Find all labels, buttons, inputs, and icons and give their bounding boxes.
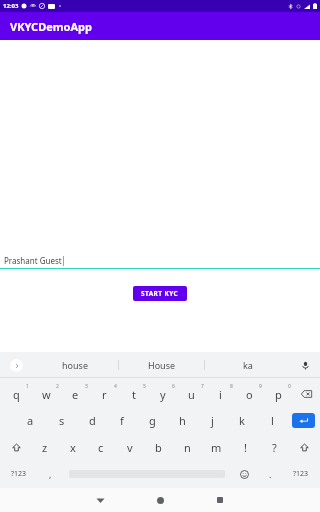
staticText: ? bbox=[272, 440, 277, 455]
staticText: t bbox=[132, 387, 136, 402]
button[interactable]: ! bbox=[231, 434, 260, 461]
staticText: ?123 bbox=[11, 469, 27, 479]
button[interactable]: f bbox=[107, 407, 137, 434]
button[interactable]: l bbox=[257, 407, 287, 434]
button[interactable]: i bbox=[206, 380, 235, 407]
button[interactable]: ?123 bbox=[283, 461, 319, 487]
button[interactable]: x bbox=[59, 434, 87, 461]
staticText: f bbox=[120, 413, 124, 428]
staticText: a bbox=[27, 413, 34, 428]
staticText: s bbox=[59, 413, 65, 428]
staticText: d bbox=[89, 413, 96, 428]
staticText: 0 bbox=[288, 383, 291, 390]
button[interactable]: q bbox=[1, 380, 31, 407]
staticText: r bbox=[102, 387, 107, 402]
staticText: b bbox=[155, 440, 162, 455]
button[interactable]: house bbox=[32, 352, 118, 378]
staticText: 3 bbox=[85, 383, 88, 390]
staticText: l bbox=[271, 413, 274, 428]
button[interactable]: Back bbox=[70, 488, 130, 512]
staticText: START KYC bbox=[141, 289, 179, 298]
staticText: ka bbox=[243, 359, 253, 371]
button[interactable]: Space bbox=[63, 461, 231, 487]
button[interactable]: r bbox=[90, 380, 119, 407]
button[interactable]: ka bbox=[205, 352, 290, 378]
staticText: g bbox=[149, 413, 156, 428]
button[interactable]: s bbox=[46, 407, 77, 434]
button[interactable]: Backspace bbox=[293, 380, 319, 407]
staticText: 8 bbox=[230, 383, 233, 390]
button[interactable]: o bbox=[235, 380, 264, 407]
button[interactable]: e bbox=[61, 380, 90, 407]
staticText: z bbox=[42, 440, 48, 455]
button[interactable]: More suggestions bbox=[0, 352, 32, 378]
button[interactable]: j bbox=[197, 407, 227, 434]
button[interactable]: Enter bbox=[287, 407, 319, 434]
button[interactable]: k bbox=[227, 407, 257, 434]
button[interactable]: . bbox=[257, 461, 283, 487]
staticText: 4 bbox=[114, 383, 117, 390]
button[interactable]: h bbox=[167, 407, 197, 434]
staticText: u bbox=[188, 387, 195, 402]
button[interactable]: b bbox=[144, 434, 173, 461]
staticText: i bbox=[219, 387, 222, 402]
button[interactable]: , bbox=[37, 461, 63, 487]
button[interactable]: Shift bbox=[289, 434, 319, 461]
button[interactable]: u bbox=[177, 380, 206, 407]
staticText: VKYCDemoApp bbox=[10, 19, 92, 34]
button[interactable]: Prashant Guest bbox=[0, 253, 320, 269]
button[interactable]: m bbox=[202, 434, 231, 461]
button[interactable]: p bbox=[264, 380, 293, 407]
button[interactable]: Shift bbox=[1, 434, 31, 461]
staticText: v bbox=[127, 440, 133, 455]
staticText: 9 bbox=[259, 383, 262, 390]
staticText: p bbox=[275, 387, 282, 402]
staticText: ! bbox=[244, 440, 247, 455]
staticText: Prashant Guest bbox=[4, 255, 62, 266]
staticText: o bbox=[246, 387, 253, 402]
button[interactable]: v bbox=[115, 434, 144, 461]
button[interactable]: START KYC bbox=[133, 286, 187, 301]
button[interactable]: a bbox=[15, 407, 46, 434]
staticText: m bbox=[211, 440, 222, 455]
button[interactable]: d bbox=[77, 407, 107, 434]
staticText: c bbox=[98, 440, 104, 455]
button[interactable]: Emoji bbox=[231, 461, 257, 487]
staticText: 7 bbox=[201, 383, 204, 390]
staticText: 1 bbox=[26, 383, 29, 390]
staticText: x bbox=[70, 440, 76, 455]
staticText: house bbox=[62, 359, 88, 371]
button[interactable]: ? bbox=[260, 434, 289, 461]
staticText: 2 bbox=[56, 383, 59, 390]
staticText: y bbox=[160, 387, 166, 402]
staticText: h bbox=[179, 413, 186, 428]
button[interactable]: c bbox=[87, 434, 115, 461]
button[interactable]: n bbox=[173, 434, 202, 461]
button[interactable]: Home bbox=[130, 488, 190, 512]
button[interactable]: z bbox=[31, 434, 59, 461]
button[interactable]: Voice input bbox=[290, 352, 320, 378]
staticText: . bbox=[269, 468, 272, 480]
staticText: j bbox=[211, 413, 214, 428]
staticText: q bbox=[13, 387, 20, 402]
button[interactable]: g bbox=[137, 407, 167, 434]
button[interactable]: t bbox=[119, 380, 148, 407]
button[interactable]: House bbox=[119, 352, 204, 378]
staticText: , bbox=[49, 468, 52, 480]
staticText: e bbox=[72, 387, 79, 402]
button[interactable]: ?123 bbox=[1, 461, 37, 487]
staticText: k bbox=[239, 413, 245, 428]
staticText: 12:03 bbox=[3, 2, 19, 10]
staticText: House bbox=[148, 359, 176, 371]
staticText: ?123 bbox=[293, 469, 309, 479]
button[interactable]: y bbox=[148, 380, 177, 407]
staticText: 6 bbox=[172, 383, 175, 390]
button[interactable]: Recent apps bbox=[190, 488, 250, 512]
staticText: 5 bbox=[143, 383, 146, 390]
button[interactable]: w bbox=[31, 380, 61, 407]
staticText: n bbox=[184, 440, 191, 455]
staticText: w bbox=[42, 387, 51, 402]
